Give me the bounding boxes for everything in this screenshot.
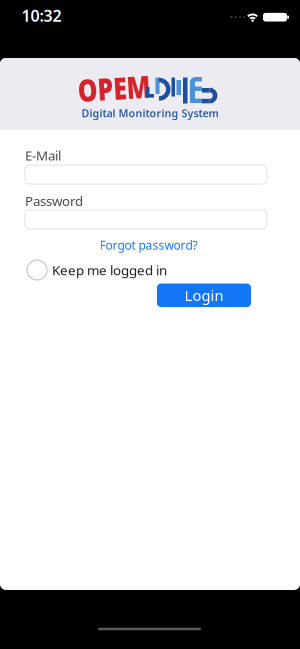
button[interactable]: Keep me logged in xyxy=(27,260,167,280)
staticText: Login xyxy=(184,286,223,305)
textField[interactable] xyxy=(32,210,267,229)
staticText: Keep me logged in xyxy=(52,261,167,279)
staticText: 10:32 xyxy=(21,5,61,26)
staticText: OPEM xyxy=(59,63,169,113)
staticText: Forgot password? xyxy=(99,237,197,253)
button[interactable]: Forgot password? xyxy=(99,237,197,253)
staticText: E-Mail xyxy=(25,146,61,164)
textField[interactable] xyxy=(32,165,267,184)
staticText: Digital Monitoring System xyxy=(81,106,218,120)
button[interactable]: Login xyxy=(157,284,251,307)
staticText: Password xyxy=(25,192,83,210)
